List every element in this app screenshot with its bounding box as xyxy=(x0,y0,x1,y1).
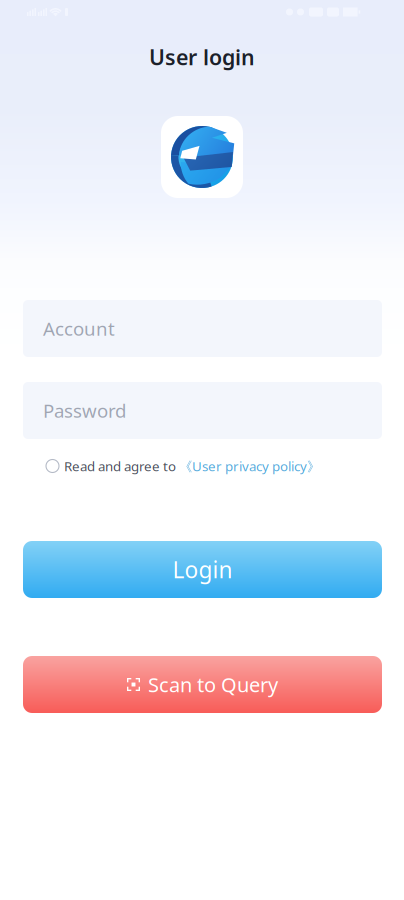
staticText: Read and agree to xyxy=(64,457,179,475)
button[interactable]: Login xyxy=(23,541,382,598)
staticText: Account xyxy=(43,316,115,341)
button[interactable]: Read and agree to xyxy=(46,455,402,477)
staticText: Password xyxy=(43,398,126,423)
staticText: Scan to Query xyxy=(148,671,278,698)
staticText: 《User privacy policy》 xyxy=(179,457,320,475)
staticText: Login xyxy=(172,554,232,584)
button[interactable]: Scan to Query xyxy=(23,656,382,713)
staticText: User login xyxy=(149,43,255,71)
